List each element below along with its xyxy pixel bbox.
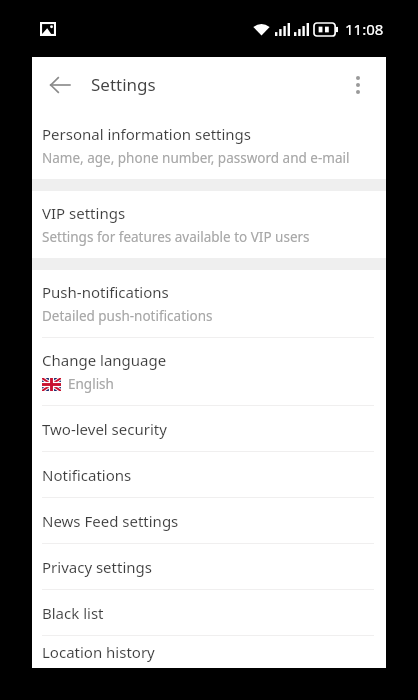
button[interactable]: Push-notifications bbox=[32, 270, 386, 337]
staticText: Detailed push-notifications bbox=[42, 307, 213, 325]
staticText: VIP settings bbox=[42, 203, 126, 223]
button[interactable]: Privacy settings bbox=[32, 544, 386, 589]
staticText: Personal information settings bbox=[42, 124, 252, 144]
staticText: Two-level security bbox=[42, 419, 167, 439]
button[interactable]: Location history bbox=[32, 636, 386, 668]
staticText: English bbox=[68, 375, 114, 393]
staticText: Settings bbox=[91, 73, 156, 96]
staticText: News Feed settings bbox=[42, 511, 179, 531]
button[interactable]: Two-level security bbox=[32, 406, 386, 451]
staticText: Black list bbox=[42, 603, 104, 623]
staticText: Change language bbox=[42, 350, 167, 370]
staticText: Name, age, phone number, password and e-… bbox=[42, 149, 350, 167]
button[interactable]: Black list bbox=[32, 590, 386, 635]
staticText: Privacy settings bbox=[42, 557, 152, 577]
button[interactable]: VIP settings bbox=[32, 191, 386, 258]
button[interactable]: News Feed settings bbox=[32, 498, 386, 543]
button[interactable]: Back bbox=[36, 61, 84, 109]
staticText: Settings for features available to VIP u… bbox=[42, 228, 310, 246]
button[interactable]: Personal information settings bbox=[32, 112, 386, 179]
staticText: Location history bbox=[42, 642, 155, 662]
button[interactable]: Notifications bbox=[32, 452, 386, 497]
button[interactable]: Change language bbox=[32, 338, 386, 405]
staticText: 11:08 bbox=[345, 19, 384, 39]
staticText: Notifications bbox=[42, 465, 132, 485]
button[interactable]: More options bbox=[336, 63, 380, 107]
staticText: Push-notifications bbox=[42, 282, 169, 302]
